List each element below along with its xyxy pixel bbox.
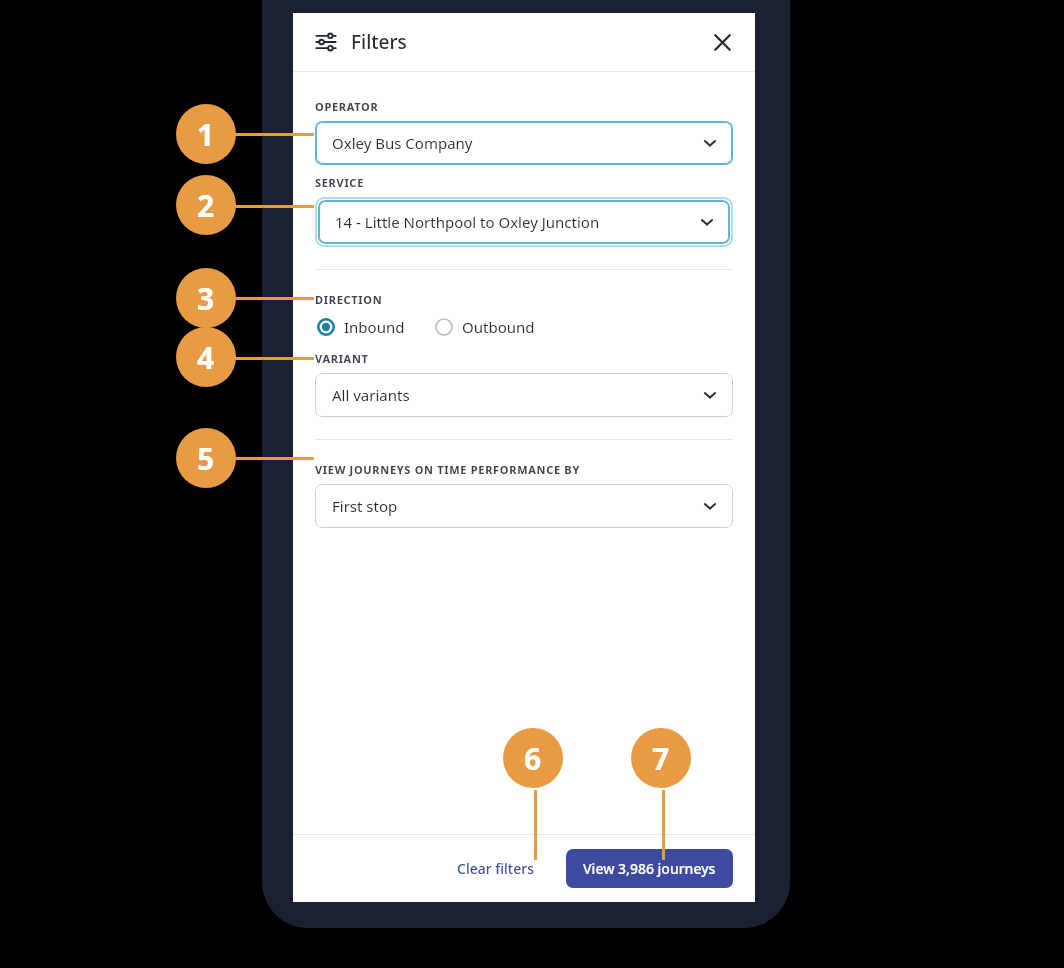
button[interactable]: Close bbox=[705, 25, 739, 59]
staticText: Outbound bbox=[462, 317, 535, 337]
staticText: VARIANT bbox=[315, 351, 369, 366]
button[interactable]: First stop bbox=[315, 484, 733, 528]
staticText: 14 - Little Northpool to Oxley Junction bbox=[335, 212, 600, 232]
staticText: OPERATOR bbox=[315, 99, 379, 114]
staticText: 7 bbox=[652, 738, 670, 779]
button[interactable]: Clear filters bbox=[447, 851, 544, 886]
button[interactable]: View 3,986 journeys bbox=[566, 849, 733, 888]
staticText: 2 bbox=[197, 185, 215, 226]
staticText: VIEW JOURNEYS ON TIME PERFORMANCE BY bbox=[315, 462, 580, 477]
staticText: Inbound bbox=[344, 317, 405, 337]
staticText: 1 bbox=[197, 114, 215, 155]
staticText: SERVICE bbox=[315, 175, 364, 190]
staticText: View 3,986 journeys bbox=[583, 859, 716, 878]
staticText: Oxley Bus Company bbox=[332, 133, 473, 153]
button[interactable]: Oxley Bus Company bbox=[315, 121, 733, 165]
staticText: All variants bbox=[332, 385, 410, 405]
button[interactable]: Outbound bbox=[433, 313, 537, 341]
other: Filters bbox=[313, 29, 339, 55]
staticText: 5 bbox=[197, 438, 215, 479]
staticText: 3 bbox=[197, 278, 215, 319]
button[interactable]: All variants bbox=[315, 373, 733, 417]
staticText: Clear filters bbox=[457, 859, 534, 878]
staticText: First stop bbox=[332, 496, 398, 516]
button[interactable]: Inbound bbox=[315, 313, 407, 341]
staticText: 4 bbox=[197, 337, 215, 378]
staticText: 6 bbox=[524, 738, 542, 779]
staticText: Filters bbox=[351, 29, 407, 55]
staticText: DIRECTION bbox=[315, 292, 383, 307]
button[interactable]: 14 - Little Northpool to Oxley Junction bbox=[318, 200, 730, 244]
